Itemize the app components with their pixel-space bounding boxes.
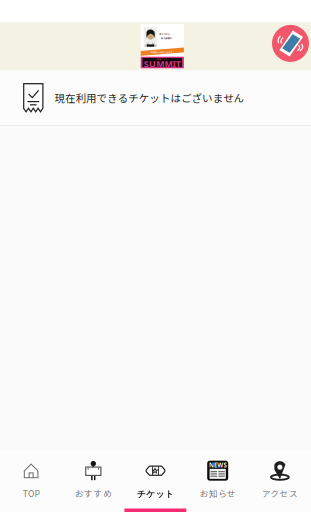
staticText: アクセス <box>262 487 298 499</box>
staticText: お知らせ <box>200 487 236 499</box>
button[interactable]: 現在利用できるチケットはございません <box>0 70 311 125</box>
staticText: TOP <box>23 487 39 499</box>
button[interactable]: シェイク <box>272 25 309 62</box>
button[interactable]: チケット <box>124 450 187 512</box>
button[interactable]: アクセス <box>249 450 311 512</box>
button[interactable]: TOP <box>0 450 62 512</box>
button[interactable]: 結トラから <box>141 24 184 69</box>
staticText: おすすめ <box>75 487 112 499</box>
button[interactable]: おすすめ <box>62 450 124 512</box>
staticText: 結トラから <box>159 32 170 36</box>
button[interactable]: NEWS <box>187 450 249 512</box>
staticText: チケット <box>137 489 174 499</box>
staticText: SUMMIT <box>144 58 181 70</box>
staticText: NEWS <box>209 461 226 469</box>
staticText: 未経験から始められます！ <box>150 50 174 54</box>
staticText: 現在利用できるチケットはございません <box>54 90 244 105</box>
staticText: 転職フェア <box>157 58 167 60</box>
staticText: 新人募集中 <box>161 36 171 40</box>
